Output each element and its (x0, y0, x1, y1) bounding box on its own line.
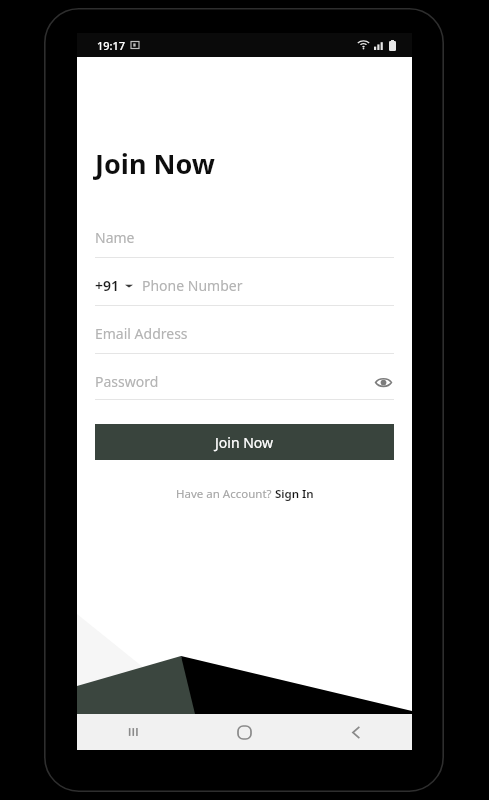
staticText: Join Now (95, 145, 215, 182)
staticText: +91 (95, 276, 120, 295)
button[interactable]: Join Now (95, 424, 394, 460)
button[interactable]: Password (95, 372, 394, 400)
staticText: Password (95, 372, 159, 391)
staticText: Email Address (95, 324, 188, 343)
button[interactable]: Email Address (95, 324, 394, 354)
button[interactable]: Have an Account? (176, 486, 314, 502)
staticText: Have an Account? (176, 486, 275, 502)
staticText: Sign In (275, 486, 314, 502)
button[interactable]: Back (300, 714, 412, 750)
staticText: Join Now (215, 433, 274, 452)
button[interactable]: Name (95, 228, 394, 258)
button[interactable]: Home (188, 714, 300, 750)
button[interactable]: Recent apps (77, 714, 188, 750)
button[interactable]: Show password (372, 374, 394, 390)
staticText: Name (95, 228, 135, 247)
staticText: 19:17 (97, 38, 126, 53)
staticText: Phone Number (142, 276, 243, 295)
button[interactable]: +91 (95, 276, 394, 306)
